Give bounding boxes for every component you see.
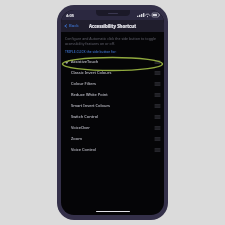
- staticText: Colour Filters: [71, 81, 96, 86]
- button[interactable]: Classic Invert Colours: [61, 67, 164, 78]
- button[interactable]: TRIPLE-CLICK the side button for:: [65, 50, 117, 54]
- staticText: AssistiveTouch: [71, 59, 99, 64]
- button[interactable]: Reduce White Point: [61, 89, 164, 100]
- button[interactable]: Switch Control: [61, 111, 164, 122]
- staticText: Classic Invert Colours: [71, 70, 112, 75]
- button[interactable]: VoiceOver: [61, 122, 164, 133]
- staticText: Configure and Automatic click the side b…: [65, 36, 156, 46]
- staticText: Back: [69, 23, 79, 29]
- staticText: Accessibility Shortcut: [89, 23, 137, 29]
- staticText: Switch Control: [71, 114, 99, 119]
- staticText: Smart Invert Colours: [71, 103, 111, 108]
- button[interactable]: Back: [61, 21, 82, 31]
- staticText: TRIPLE-CLICK the side button for:: [65, 50, 117, 54]
- staticText: Voice Control: [71, 147, 96, 152]
- staticText: 4:05: [66, 13, 74, 18]
- button[interactable]: AssistiveTouch: [61, 56, 164, 67]
- staticText: Zoom: [71, 136, 82, 141]
- staticText: VoiceOver: [71, 125, 91, 130]
- button[interactable]: Voice Control: [61, 144, 164, 155]
- button[interactable]: Smart Invert Colours: [61, 100, 164, 111]
- staticText: Reduce White Point: [71, 92, 108, 97]
- button[interactable]: Colour Filters: [61, 78, 164, 89]
- button[interactable]: Zoom: [61, 133, 164, 144]
